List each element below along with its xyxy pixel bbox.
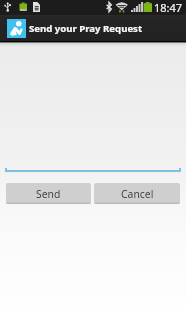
staticText: Send <box>36 187 61 201</box>
button[interactable]: Cancel <box>94 183 180 204</box>
button[interactable] <box>0 46 186 173</box>
button[interactable]: Send your Pray Request <box>0 15 186 41</box>
button[interactable]: Send <box>6 183 91 204</box>
staticText: 18:47 <box>154 0 183 15</box>
staticText: Cancel <box>121 187 154 201</box>
staticText: Send your Pray Request <box>29 22 143 35</box>
